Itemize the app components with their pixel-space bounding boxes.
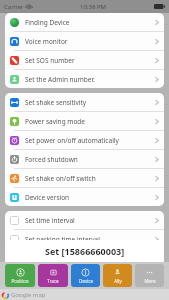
- staticText: Set SOS number: [25, 56, 75, 65]
- button[interactable]: Finding Device: [5, 13, 164, 31]
- button[interactable]: Set power on/off automatically: [5, 131, 164, 149]
- staticText: More: [144, 278, 156, 284]
- button[interactable]: Set [15866660003]: [5, 240, 164, 262]
- staticText: Carrier: [4, 3, 24, 11]
- staticText: Google map: [11, 291, 46, 299]
- staticText: Trace: [47, 278, 59, 284]
- staticText: Set power on/off automatically: [25, 136, 119, 145]
- button[interactable]: Voice monitor: [5, 32, 164, 50]
- staticText: Finding Device: [25, 18, 70, 27]
- button[interactable]: [5, 249, 164, 267]
- button[interactable]: Set shake sensitivity: [5, 93, 164, 111]
- button[interactable]: Set parking time interval: [5, 230, 164, 248]
- button[interactable]: Forced shutdown: [5, 150, 164, 168]
- staticText: Voice monitor: [25, 37, 68, 46]
- staticText: Device version: [25, 193, 70, 202]
- button[interactable]: Set time interval: [5, 211, 164, 229]
- staticText: Set shake on/off switch: [25, 174, 96, 183]
- button[interactable]: Device version: [5, 188, 164, 206]
- button[interactable]: Set shake on/off switch: [5, 169, 164, 187]
- staticText: Power saving mode: [25, 117, 86, 126]
- button[interactable]: Position: [5, 264, 35, 287]
- staticText: Device: [79, 278, 93, 284]
- button[interactable]: Ally: [103, 264, 132, 287]
- button[interactable]: Trace: [38, 264, 68, 287]
- staticText: Set shake sensitivity: [25, 98, 87, 107]
- staticText: Ally: [114, 278, 122, 284]
- button[interactable]: Set SOS number: [5, 51, 164, 69]
- staticText: Position: [11, 278, 29, 284]
- staticText: Forced shutdown: [25, 155, 78, 164]
- button[interactable]: Power saving mode: [5, 112, 164, 130]
- button[interactable]: Device: [71, 264, 100, 287]
- staticText: Set time interval: [25, 216, 75, 225]
- staticText: 10:38 PM: [80, 3, 106, 11]
- staticText: Set the Admin number.: [25, 75, 95, 84]
- button[interactable]: More: [135, 264, 164, 287]
- button[interactable]: Set the Admin number.: [5, 70, 164, 88]
- staticText: Set parking time interval: [25, 235, 100, 244]
- staticText: Set [15866660003]: [45, 245, 125, 257]
